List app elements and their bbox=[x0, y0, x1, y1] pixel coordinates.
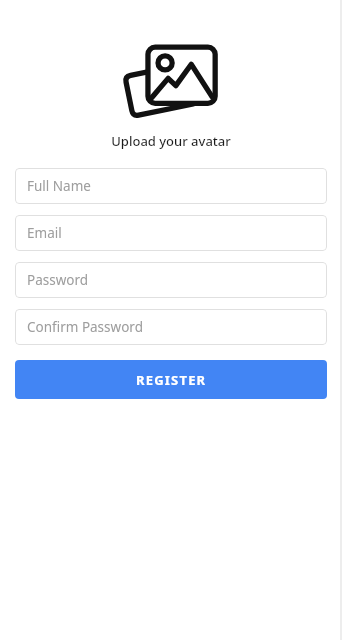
button[interactable]: Full Name bbox=[15, 168, 327, 204]
staticText: Upload your avatar bbox=[111, 132, 231, 150]
button[interactable]: Password bbox=[15, 262, 327, 298]
button[interactable]: REGISTER bbox=[15, 360, 327, 399]
staticText: Email bbox=[27, 224, 62, 242]
button[interactable]: Confirm Password bbox=[15, 309, 327, 345]
staticText: Full Name bbox=[27, 177, 91, 195]
staticText: REGISTER bbox=[136, 371, 207, 389]
staticText: Confirm Password bbox=[27, 318, 143, 336]
staticText: Password bbox=[27, 271, 89, 289]
button[interactable]: Email bbox=[15, 215, 327, 251]
button[interactable]: Upload your avatar bbox=[123, 46, 219, 124]
